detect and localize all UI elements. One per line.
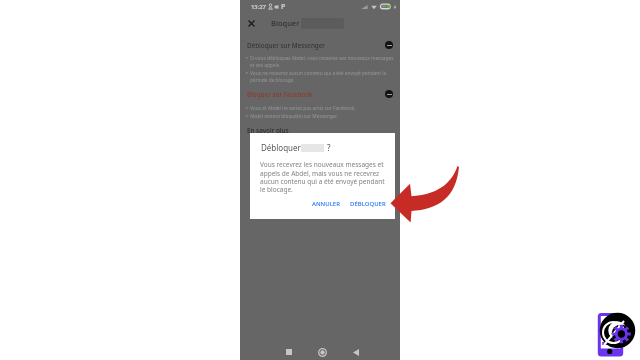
staticText: 13:27: [251, 3, 266, 11]
button[interactable]: ANNULER: [309, 197, 344, 211]
staticText: ?: [327, 142, 331, 153]
button[interactable]: Recents: [279, 342, 299, 360]
staticText: P: [281, 2, 286, 12]
staticText: Abdel restera bloqué(e) sur Messenger.: [250, 113, 338, 120]
staticText: Vous ne recevrez aucun contenu qui a été…: [250, 70, 397, 84]
button[interactable]: En savoir plus: [247, 126, 289, 135]
button[interactable]: Bloquer sur Facebook: [247, 89, 393, 99]
staticText: DÉBLOQUER: [350, 200, 386, 208]
staticText: Vous recevrez les nouveaux messages et a…: [260, 160, 388, 193]
staticText: Débloquer: [261, 142, 301, 153]
staticText: ANNULER: [312, 200, 341, 208]
staticText: Si vous débloquez Abdel, vous recevrez s…: [250, 55, 397, 69]
button[interactable]: Close: [243, 15, 259, 31]
staticText: Vous et Abdel ne seriez pas amis sur Fac…: [250, 105, 356, 112]
staticText: Bloquer sur Facebook: [247, 90, 313, 99]
button[interactable]: DÉBLOQUER: [347, 197, 389, 211]
staticText: Bloquer: [271, 18, 300, 28]
button[interactable]: Home: [312, 342, 332, 360]
button[interactable]: Débloquer sur Messenger: [247, 40, 393, 50]
button[interactable]: Back: [346, 342, 366, 360]
staticText: Débloquer sur Messenger: [247, 41, 326, 50]
